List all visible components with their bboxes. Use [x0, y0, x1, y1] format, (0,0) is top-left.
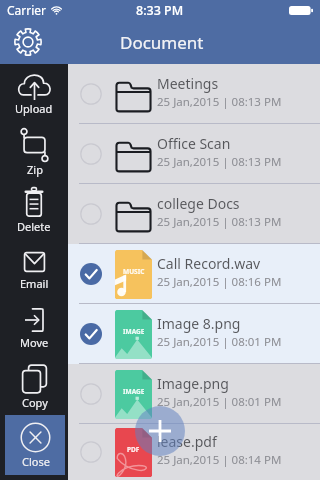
button[interactable]: Office Scan	[68, 124, 320, 184]
staticText: 25 Jan,2015 | 08:14 PM	[157, 452, 282, 468]
button[interactable]: Delete	[0, 181, 68, 240]
staticText: 25 Jan,2015 | 08:13 PM	[157, 154, 282, 170]
staticText: Upload	[15, 101, 53, 116]
button[interactable]: Settings	[14, 28, 42, 56]
staticText: 25 Jan,2015 | 08:13 PM	[157, 94, 282, 110]
button[interactable]: college Docs	[68, 184, 320, 244]
button[interactable]: MUSIC	[68, 244, 320, 304]
button[interactable]: Move	[0, 298, 68, 357]
staticText: 25 Jan,2015 | 08:13 PM	[157, 214, 282, 230]
staticText: MUSIC	[123, 267, 145, 276]
staticText: Document	[120, 31, 204, 54]
staticText: IMAGE	[123, 387, 145, 396]
staticText: Email	[20, 276, 49, 291]
button[interactable]: Copy	[0, 357, 68, 416]
staticText: IMAGE	[123, 327, 145, 336]
staticText: Move	[20, 335, 49, 350]
button[interactable]: IMAGE	[68, 304, 320, 364]
button[interactable]: IMAGE	[68, 364, 320, 424]
button[interactable]: Add	[135, 406, 185, 456]
staticText: 25 Jan,2015 | 08:16 PM	[157, 274, 282, 290]
staticText: Image 8.png	[157, 314, 241, 333]
button[interactable]: Email	[0, 240, 68, 299]
button[interactable]: Zip	[0, 123, 68, 182]
staticText: Meetings	[157, 74, 219, 93]
staticText: Close	[22, 454, 50, 469]
staticText: Copy	[22, 395, 48, 410]
button[interactable]: Upload	[0, 64, 68, 123]
staticText: Call Record.wav	[157, 254, 261, 273]
staticText: Image.png	[157, 374, 229, 393]
staticText: 8:33 PM	[136, 2, 184, 19]
button[interactable]: PDF	[68, 424, 320, 480]
button[interactable]: Meetings	[68, 64, 320, 124]
staticText: PDF	[127, 445, 140, 454]
button[interactable]: Close	[5, 415, 65, 475]
staticText: 25 Jan,2015 | 08:01 PM	[157, 334, 282, 350]
staticText: college Docs	[157, 194, 240, 213]
staticText: 25 Jan,2015 | 08:01 PM	[157, 394, 282, 410]
staticText: Carrier	[7, 2, 47, 18]
staticText: Delete	[17, 219, 51, 234]
staticText: Zip	[27, 162, 43, 177]
staticText: Office Scan	[157, 134, 231, 153]
staticText: lease.pdf	[157, 432, 217, 451]
